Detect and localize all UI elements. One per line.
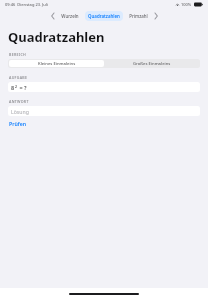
button[interactable]: Quadratzahlen	[85, 11, 123, 21]
button[interactable]: Lösung	[8, 106, 200, 116]
staticText: 2	[15, 84, 18, 89]
staticText: Quadratzahlen	[8, 28, 105, 46]
staticText: 100%	[181, 2, 192, 7]
button[interactable]: Kleines Einmaleins	[9, 60, 104, 67]
staticText: Primzahl	[129, 13, 148, 19]
button[interactable]: 8	[8, 82, 200, 92]
staticText: = ?	[18, 84, 27, 91]
button[interactable]: Wurzeln	[58, 11, 82, 21]
staticText: ANTWORT	[9, 99, 29, 104]
staticText: 09:46 Dienstag 23. Juli	[5, 2, 48, 7]
button[interactable]: Großes Einmaleins	[104, 60, 199, 67]
staticText: Großes Einmaleins	[133, 61, 171, 67]
staticText: Prüfen	[9, 120, 27, 127]
staticText: 8	[11, 84, 15, 91]
button[interactable]: Zurück	[48, 11, 58, 21]
staticText: Quadratzahlen	[88, 13, 120, 19]
button[interactable]: Primzahl	[126, 11, 151, 21]
staticText: Lösung	[11, 108, 29, 115]
staticText: Kleines Einmaleins	[38, 61, 76, 67]
staticText: BEREICH	[9, 52, 26, 57]
staticText: Wurzeln	[61, 13, 79, 19]
button[interactable]: Prüfen	[8, 119, 28, 128]
button[interactable]: Weiter	[151, 11, 161, 21]
staticText: AUFGABE	[9, 75, 28, 80]
